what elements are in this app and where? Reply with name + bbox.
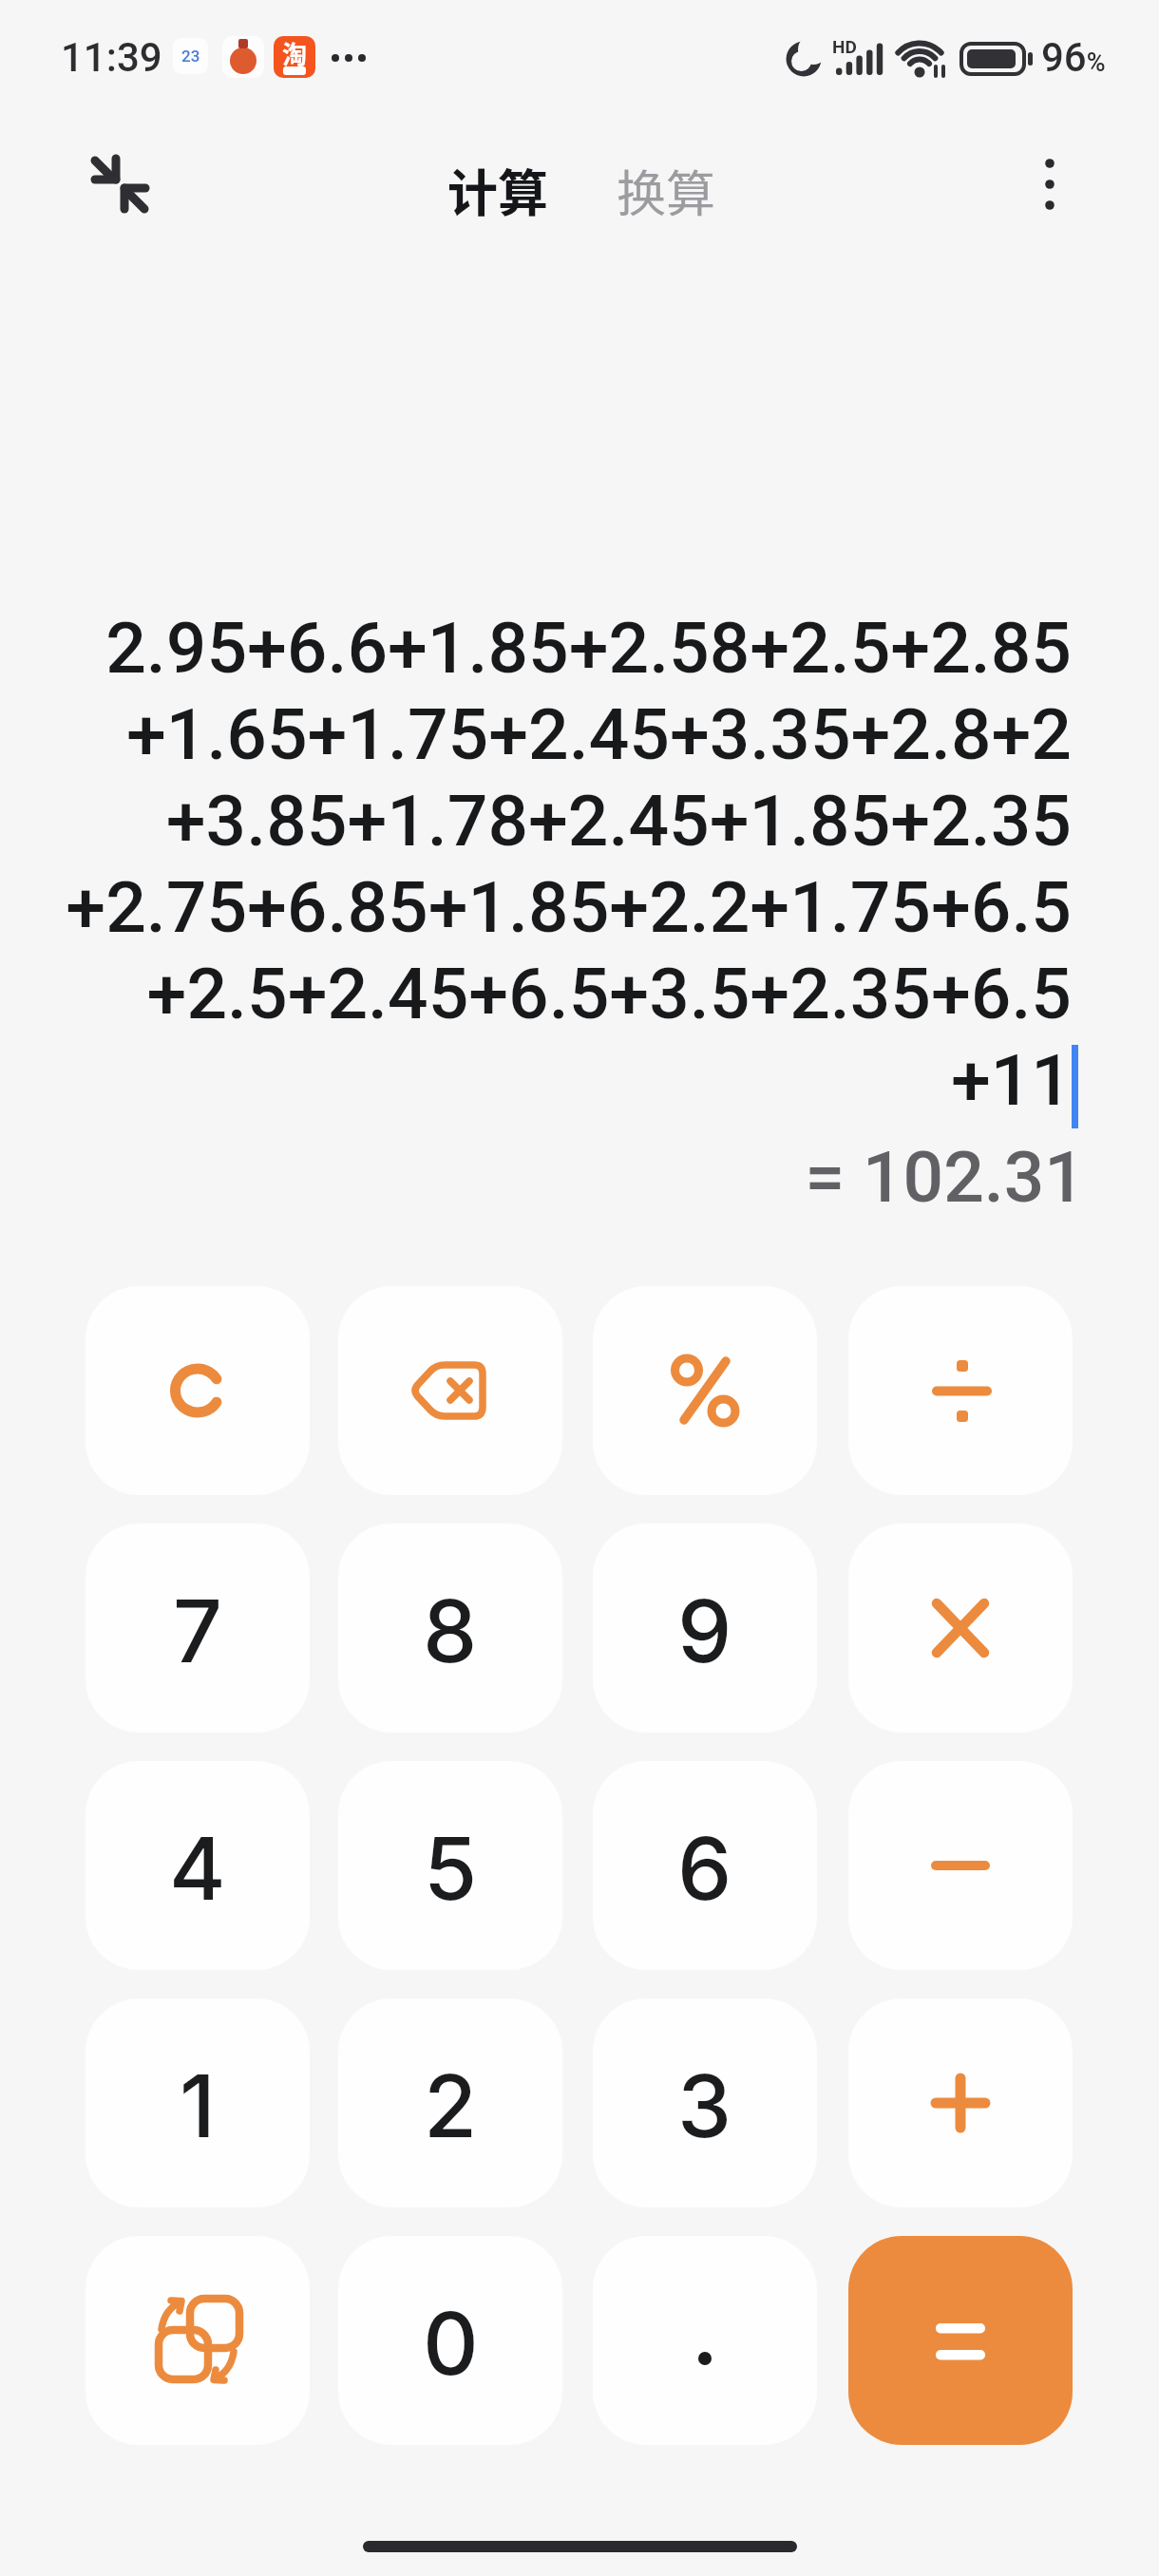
button[interactable]: 4: [85, 1761, 310, 1970]
button[interactable]: 5: [338, 1761, 562, 1970]
button[interactable]: [593, 2236, 817, 2445]
staticText: 23: [181, 47, 200, 66]
staticText: 3: [677, 2054, 732, 2158]
staticText: 2: [424, 2054, 478, 2158]
staticText: 6: [677, 1816, 732, 1921]
button[interactable]: [848, 1286, 1073, 1495]
button[interactable]: 9: [593, 1524, 817, 1733]
button[interactable]: 7: [85, 1524, 310, 1733]
button[interactable]: 2: [338, 1998, 562, 2207]
staticText: 11:39: [61, 34, 162, 81]
button[interactable]: [1016, 152, 1083, 218]
staticText: 计算: [447, 154, 548, 227]
staticText: 4: [169, 1816, 226, 1921]
button[interactable]: 计算: [447, 154, 548, 227]
button[interactable]: [85, 1286, 310, 1495]
button[interactable]: [76, 138, 163, 225]
staticText: 9: [677, 1579, 732, 1683]
button[interactable]: [338, 1286, 562, 1495]
staticText: 0: [423, 2291, 479, 2396]
button[interactable]: [848, 1761, 1073, 1970]
staticText: 7: [173, 1579, 222, 1683]
button[interactable]: [848, 2236, 1073, 2445]
button[interactable]: 3: [593, 1998, 817, 2207]
button[interactable]: 换算: [617, 155, 716, 226]
button[interactable]: [848, 1524, 1073, 1733]
button[interactable]: 6: [593, 1761, 817, 1970]
button[interactable]: [593, 1286, 817, 1495]
staticText: HD: [832, 36, 857, 57]
button[interactable]: 8: [338, 1524, 562, 1733]
staticText: 8: [423, 1579, 478, 1683]
staticText: 1: [180, 2054, 216, 2158]
staticText: 96%: [1041, 34, 1106, 81]
staticText: 2.95+6.6+1.85+2.58+2.5+2.85 +1.65+1.75+2…: [38, 606, 1072, 1122]
staticText: = 102.31: [51, 1135, 1085, 1219]
staticText: 5: [424, 1816, 478, 1921]
staticText: 淘: [282, 36, 308, 71]
button[interactable]: 1: [85, 1998, 310, 2207]
button[interactable]: 0: [338, 2236, 562, 2445]
button[interactable]: [85, 2236, 310, 2445]
button[interactable]: [848, 1998, 1073, 2207]
staticText: 换算: [617, 155, 716, 226]
